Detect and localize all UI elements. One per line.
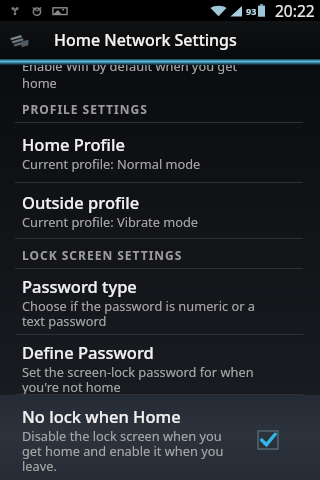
button[interactable]: Outside profile: [0, 183, 320, 238]
staticText: PROFILE SETTINGS: [22, 101, 148, 117]
staticText: Enable Wifi by default when you get: [22, 57, 238, 74]
button[interactable]: Define Password: [0, 335, 320, 394]
button[interactable]: Enable Wifi by default when you get: [0, 59, 320, 92]
staticText: No lock when Home: [22, 405, 181, 427]
button[interactable]: Home Profile: [0, 123, 320, 182]
button[interactable]: Home Network Settings: [0, 21, 320, 59]
staticText: Current profile: Normal mode: [22, 155, 201, 172]
staticText: 20:22: [275, 0, 315, 21]
staticText: Home Network Settings: [54, 29, 237, 51]
staticText: Disable the lock screen when you get hom…: [22, 427, 224, 475]
staticText: 93: [246, 5, 257, 17]
staticText: Outside profile: [22, 191, 140, 213]
staticText: home: [22, 74, 57, 91]
staticText: LOCK SCREEN SETTINGS: [22, 247, 183, 263]
button[interactable]: No lock when Home: [0, 395, 320, 480]
staticText: Choose if the password is numeric or a t…: [22, 297, 255, 330]
staticText: Password type: [22, 275, 137, 297]
button[interactable]: Password type: [0, 269, 320, 334]
staticText: Current profile: Vibrate mode: [22, 213, 199, 230]
button[interactable]: No lock when Home checkbox: [254, 426, 282, 454]
staticText: Home Profile: [22, 133, 125, 155]
staticText: Set the screen-lock password for when yo…: [22, 363, 254, 394]
staticText: Define Password: [22, 341, 154, 363]
